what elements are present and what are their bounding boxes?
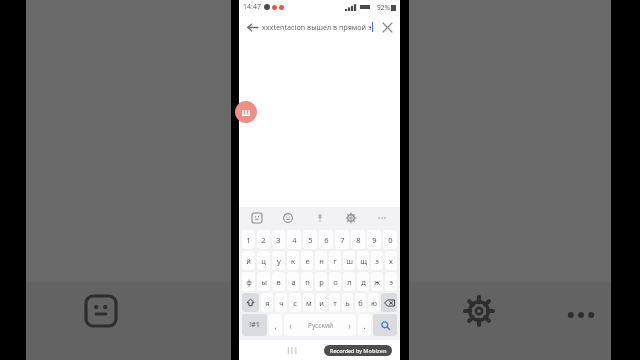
staticText: п [305, 277, 310, 287]
staticText: ш [241, 105, 251, 119]
staticText: х [389, 256, 393, 266]
staticText: т [333, 298, 337, 308]
button[interactable]: е [301, 251, 313, 270]
staticText: э [389, 277, 393, 287]
button[interactable]: а [287, 272, 299, 291]
staticText: 7 [340, 235, 345, 245]
button[interactable]: ц [257, 251, 270, 270]
button[interactable]: с [289, 293, 301, 312]
staticText: ц [261, 256, 266, 266]
staticText: и [319, 298, 324, 308]
button[interactable]: ю [368, 293, 379, 312]
button[interactable]: н [315, 251, 327, 270]
button[interactable]: xxxtentacion вышел в прямой э [262, 22, 377, 32]
button[interactable]: Channel avatar [235, 101, 257, 123]
staticText: ||| [286, 345, 298, 355]
staticText: у [277, 256, 281, 266]
button[interactable]: 4 [287, 230, 301, 249]
button[interactable]: 5 [303, 230, 317, 249]
button[interactable]: Clear query [377, 17, 397, 37]
button[interactable]: Emoji [280, 210, 296, 226]
button[interactable]: п [301, 272, 313, 291]
staticText: в [276, 277, 281, 287]
staticText: Recorded by [329, 347, 363, 354]
button[interactable]: б [355, 293, 366, 312]
button[interactable]: ж [371, 272, 383, 291]
button[interactable]: и [316, 293, 327, 312]
staticText: ‹ [289, 320, 292, 331]
button[interactable]: Keyboard settings [343, 210, 359, 226]
button[interactable]: More options [374, 210, 390, 226]
staticText: Mobizen [363, 347, 387, 354]
button[interactable]: у [272, 251, 285, 270]
staticText: 6 [324, 235, 329, 245]
staticText: с [293, 298, 297, 308]
button[interactable]: Stickers [249, 210, 265, 226]
button[interactable]: ь [342, 293, 353, 312]
button[interactable]: 9 [367, 230, 381, 249]
button[interactable]: к [287, 251, 299, 270]
button[interactable]: . [358, 314, 371, 336]
button[interactable]: 7 [335, 230, 349, 249]
staticText: 3 [276, 235, 281, 245]
button[interactable]: й [242, 251, 255, 270]
button[interactable]: я [261, 293, 273, 312]
button[interactable]: ф [242, 272, 255, 291]
button[interactable]: щ [357, 251, 369, 270]
staticText: щ [360, 256, 367, 266]
staticText: ю [371, 298, 377, 308]
staticText: 9 [372, 235, 377, 245]
button[interactable]: х [385, 251, 397, 270]
button[interactable]: 6 [319, 230, 333, 249]
staticText: г [333, 256, 337, 266]
button[interactable]: Search [373, 314, 397, 336]
staticText: я [265, 298, 270, 308]
staticText: 5 [308, 235, 313, 245]
button[interactable]: т [329, 293, 340, 312]
button[interactable]: Backspace [381, 293, 397, 312]
button[interactable]: ы [257, 272, 270, 291]
staticText: о [333, 277, 338, 287]
button[interactable]: з [371, 251, 383, 270]
button[interactable]: м [303, 293, 314, 312]
button[interactable]: ‹ [284, 314, 356, 336]
staticText: xxxtentacion вышел в прямой э [262, 22, 372, 32]
staticText: ч [279, 298, 284, 308]
button[interactable]: ш [343, 251, 355, 270]
button[interactable]: Back [242, 17, 262, 37]
button[interactable]: !#1 [242, 314, 267, 336]
staticText: › [348, 320, 351, 331]
staticText: 14:47 [243, 2, 261, 12]
staticText: й [246, 256, 251, 266]
button[interactable]: 1 [242, 230, 255, 249]
staticText: , [274, 320, 277, 331]
staticText: !#1 [249, 320, 260, 330]
button[interactable]: 8 [351, 230, 365, 249]
staticText: ж [374, 277, 380, 287]
staticText: ф [246, 277, 252, 287]
staticText: з [375, 256, 379, 266]
staticText: а [291, 277, 296, 287]
button[interactable]: в [272, 272, 285, 291]
button[interactable]: 2 [257, 230, 270, 249]
staticText: 0 [388, 235, 393, 245]
button[interactable]: э [385, 272, 397, 291]
button[interactable]: г [329, 251, 341, 270]
button[interactable]: р [315, 272, 327, 291]
staticText: 2 [261, 235, 266, 245]
staticText: . [363, 320, 366, 331]
staticText: Русский [308, 321, 333, 330]
staticText: д [361, 277, 366, 287]
button[interactable]: Shift [242, 293, 259, 312]
button[interactable]: ч [275, 293, 287, 312]
button[interactable]: , [269, 314, 282, 336]
button[interactable]: Voice input [312, 210, 328, 226]
staticText: н [319, 256, 324, 266]
button[interactable]: о [329, 272, 341, 291]
staticText: 4 [292, 235, 297, 245]
button[interactable]: 0 [383, 230, 397, 249]
staticText: 92% [377, 3, 390, 12]
button[interactable]: л [343, 272, 355, 291]
button[interactable]: 3 [272, 230, 285, 249]
button[interactable]: д [357, 272, 369, 291]
